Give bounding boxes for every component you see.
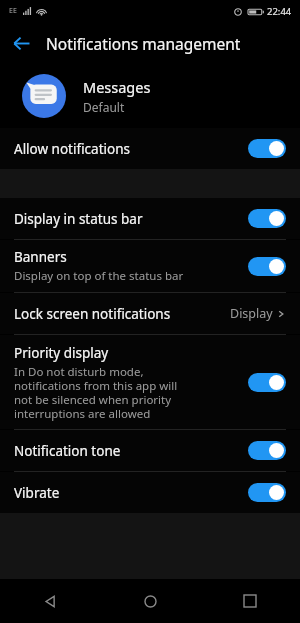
staticText: Default [83, 99, 125, 115]
button[interactable]: Allow notifications [0, 128, 300, 169]
staticText: Display [230, 305, 273, 322]
staticText: Display in status bar [14, 210, 143, 228]
staticText: Allow notifications [14, 140, 130, 158]
button[interactable]: Priority display [0, 335, 300, 429]
staticText: 22:44 [267, 5, 292, 18]
button[interactable]: Toggle [248, 209, 286, 228]
staticText: Notification tone [14, 442, 121, 460]
staticText: In Do not disturb mode, notifications fr… [14, 364, 178, 421]
button[interactable]: Recent apps [200, 579, 300, 623]
button[interactable]: Back [0, 579, 100, 623]
button[interactable]: Banners [0, 240, 300, 292]
staticText: Messages [83, 77, 151, 97]
staticText: EE [9, 6, 17, 16]
staticText: Display on top of the status bar [14, 268, 184, 284]
button[interactable]: Toggle [248, 373, 286, 392]
button[interactable]: Notification tone [0, 430, 300, 471]
button[interactable]: Toggle [248, 257, 286, 276]
button[interactable]: Vibrate [0, 472, 300, 513]
staticText: Vibrate [14, 484, 60, 502]
button[interactable]: Lock screen notifications [0, 293, 300, 334]
button[interactable]: Back [0, 22, 42, 64]
staticText: Lock screen notifications [14, 305, 171, 323]
button[interactable]: Home [100, 579, 200, 623]
button[interactable]: Toggle [248, 441, 286, 460]
staticText: Notifications management [46, 33, 241, 54]
staticText: Banners [14, 248, 67, 266]
button[interactable]: Toggle [248, 139, 286, 158]
button[interactable]: Toggle [248, 483, 286, 502]
button[interactable]: Display in status bar [0, 198, 300, 239]
staticText: Priority display [14, 344, 109, 362]
button[interactable]: Messages [0, 64, 300, 128]
